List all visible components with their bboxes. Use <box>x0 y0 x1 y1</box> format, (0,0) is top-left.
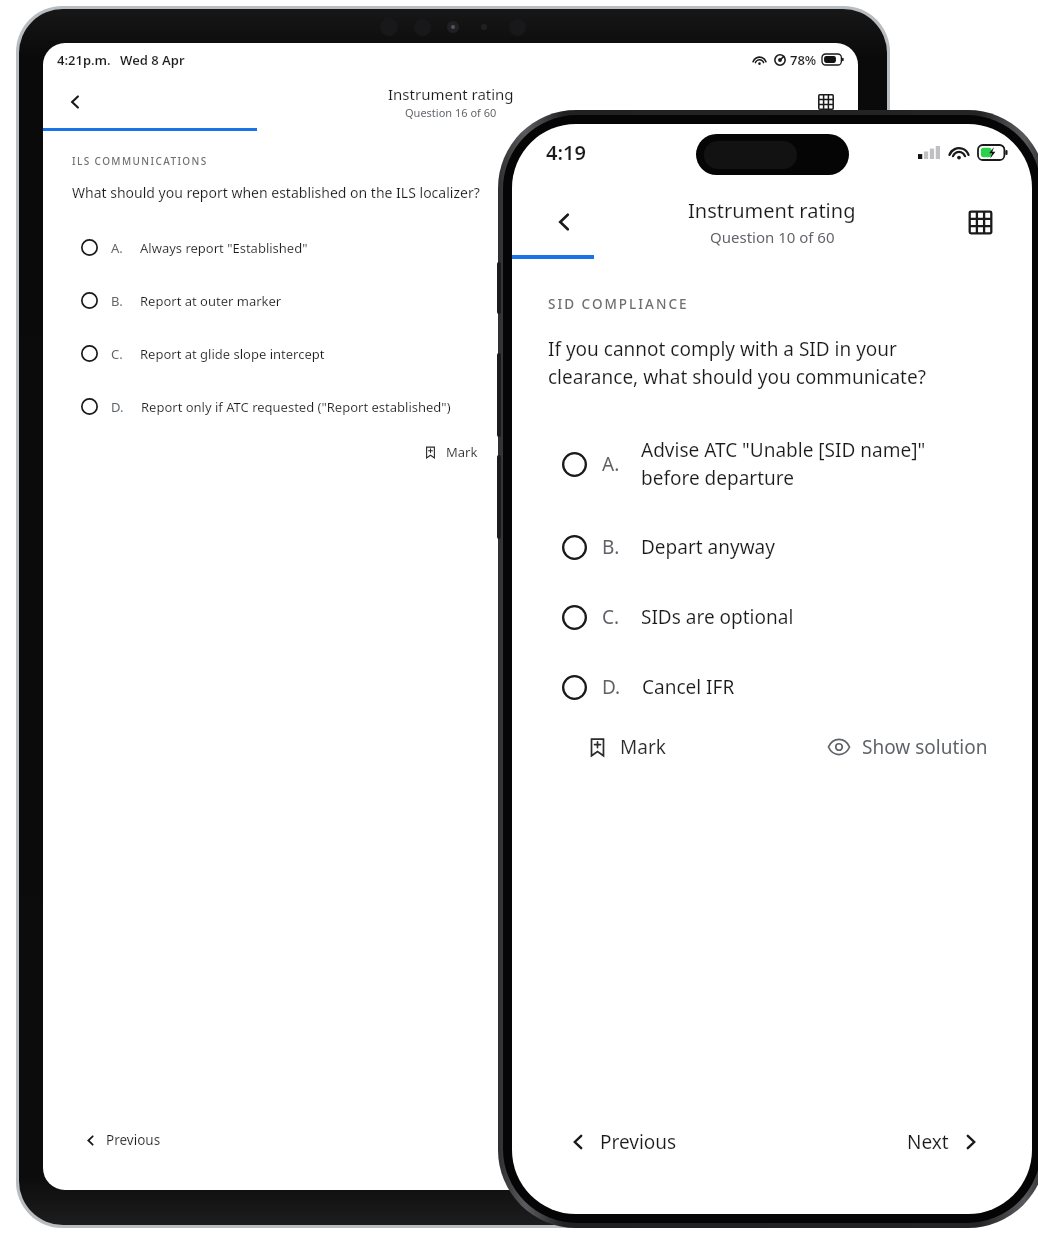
staticText: B. <box>602 534 620 560</box>
staticText: Question 10 of 60 <box>710 227 835 247</box>
staticText: Question 16 of 60 <box>405 105 497 120</box>
button[interactable]: Question navigator <box>808 84 844 120</box>
button[interactable]: Previous <box>79 1124 165 1156</box>
button[interactable]: Mark <box>413 437 488 467</box>
button[interactable]: C. <box>512 582 1032 652</box>
staticText: B. <box>111 292 123 310</box>
button[interactable]: A. <box>512 416 1032 512</box>
staticText: If you cannot comply with a SID in your … <box>548 336 990 390</box>
staticText: C. <box>111 345 123 363</box>
staticText: Report at glide slope intercept <box>140 345 325 363</box>
button[interactable]: Back <box>542 200 586 244</box>
staticText: D. <box>111 398 124 416</box>
button[interactable]: Back <box>55 82 95 122</box>
staticText: Wed 8 Apr <box>120 51 185 69</box>
staticText: Mark <box>446 443 478 461</box>
staticText: A. <box>111 239 123 257</box>
staticText: D. <box>602 674 621 700</box>
button[interactable]: C. <box>43 327 858 380</box>
staticText: Previous <box>600 1129 677 1155</box>
staticText: Mark <box>620 734 666 760</box>
button[interactable]: Previous <box>567 1120 677 1164</box>
staticText: Instrument rating <box>388 84 514 104</box>
staticText: What should you report when established … <box>72 183 480 202</box>
button[interactable]: Question navigator <box>958 200 1002 244</box>
staticText: Report at outer marker <box>140 292 282 310</box>
staticText: 4:21p.m. <box>57 51 111 69</box>
staticText: SID COMPLIANCE <box>548 295 689 313</box>
button[interactable]: B. <box>512 512 1032 582</box>
staticText: Depart anyway <box>641 534 775 560</box>
staticText: 78% <box>790 51 817 69</box>
staticText: Report only if ATC requested ("Report es… <box>141 398 451 416</box>
staticText: 4:19 <box>546 139 586 166</box>
staticText: Instrument rating <box>688 197 856 224</box>
staticText: Always report "Established" <box>140 239 308 257</box>
button[interactable]: A. <box>43 221 858 274</box>
button[interactable]: B. <box>43 274 858 327</box>
button[interactable]: D. <box>512 652 1032 722</box>
staticText: Next <box>907 1129 949 1155</box>
staticText: Cancel IFR <box>642 674 735 700</box>
staticText: Show solution <box>862 734 988 760</box>
staticText: SIDs are optional <box>641 604 794 630</box>
staticText: A. <box>602 451 620 477</box>
staticText: Previous <box>106 1131 161 1149</box>
button[interactable]: D. <box>43 380 858 433</box>
staticText: Advise ATC "Unable [SID name]" before de… <box>641 437 926 491</box>
button[interactable]: Mark <box>586 726 666 768</box>
button[interactable]: Next <box>907 1120 982 1164</box>
button[interactable]: Show solution <box>827 726 988 768</box>
staticText: ILS COMMUNICATIONS <box>72 154 208 168</box>
staticText: C. <box>602 604 620 630</box>
